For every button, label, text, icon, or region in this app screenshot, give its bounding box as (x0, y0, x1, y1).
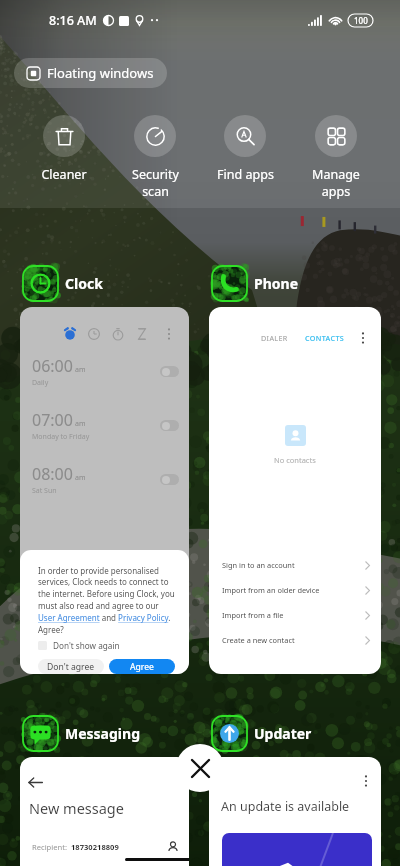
button[interactable]: Clock (20, 266, 103, 301)
staticText: Messaging (65, 724, 140, 743)
staticText: Don't agree (47, 661, 95, 673)
staticText: Create a new contact (222, 635, 295, 645)
button[interactable]: Cleaner (21, 115, 107, 183)
staticText: Import from an older device (222, 585, 320, 595)
button[interactable]: Don't show again (38, 640, 120, 651)
staticText: am (75, 419, 86, 429)
staticText: Manage apps (312, 166, 360, 199)
button[interactable]: Messaging (20, 716, 140, 751)
button[interactable]: Agree (109, 659, 175, 674)
button[interactable] (160, 420, 179, 431)
button[interactable]: Manage apps (293, 115, 379, 199)
button[interactable] (160, 366, 179, 377)
button[interactable]: DIALER (209, 307, 381, 674)
staticText: Floating windows (47, 64, 154, 82)
button[interactable]: Find apps (202, 115, 288, 183)
staticText: 8:16 AM (49, 12, 97, 29)
staticText: In order to provide personalised service… (38, 565, 175, 635)
button[interactable] (160, 474, 179, 485)
staticText: No contacts (274, 455, 316, 465)
button[interactable]: Create a new contact (209, 634, 381, 646)
staticText: Daily (32, 378, 49, 388)
staticText: 08:00 (32, 463, 73, 485)
button[interactable]: CONTACTS (305, 333, 345, 343)
button[interactable]: Import from a file (209, 609, 381, 621)
button[interactable]: More options (209, 757, 381, 866)
button[interactable]: Updater (209, 716, 312, 751)
staticText: An update is available (221, 798, 350, 815)
button[interactable]: Don't agree (38, 659, 104, 674)
staticText: New message (29, 798, 124, 818)
staticText: Cleaner (41, 166, 87, 183)
staticText: Don't show again (53, 640, 120, 651)
button[interactable]: Back (28, 775, 43, 790)
button[interactable]: Close all (176, 744, 224, 792)
staticText: am (75, 365, 86, 375)
button[interactable]: Security scan (112, 115, 198, 199)
button[interactable]: Choose contact (167, 841, 179, 853)
staticText: am (75, 473, 86, 483)
staticText: 06:00 (32, 355, 73, 377)
staticText: 100 (354, 15, 368, 26)
button[interactable]: Back (20, 757, 189, 866)
staticText: Agree (130, 661, 154, 673)
staticText: Sat Sun (32, 486, 57, 496)
staticText: Sign in to an account (222, 560, 295, 570)
button[interactable]: DIALER (261, 333, 288, 343)
staticText: Import from a file (222, 610, 284, 620)
button[interactable]: More options (20, 307, 189, 674)
button[interactable]: More options (161, 326, 177, 342)
staticText: Monday to Friday (32, 432, 90, 442)
button[interactable]: Sign in to an account (209, 559, 381, 571)
button[interactable]: Import from an older device (209, 584, 381, 596)
staticText: 07:00 (32, 409, 73, 431)
staticText: Clock (65, 274, 103, 293)
staticText: Security scan (132, 166, 179, 199)
button[interactable]: More options (356, 331, 370, 345)
button[interactable]: More options (359, 774, 373, 788)
staticText: Phone (254, 274, 299, 293)
button[interactable]: Phone (209, 266, 299, 301)
staticText: Find apps (217, 166, 274, 183)
button[interactable]: Floating windows (14, 58, 167, 88)
staticText: Updater (254, 724, 312, 743)
staticText: 18730218809 (71, 842, 119, 852)
staticText: Recipient: (32, 842, 67, 852)
